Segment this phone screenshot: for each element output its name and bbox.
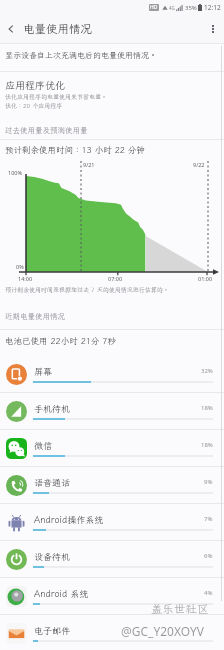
staticText: 6% <box>204 552 213 560</box>
staticText: HD <box>150 4 158 11</box>
button[interactable]: 屏幕 <box>0 356 224 393</box>
button[interactable]: Android 系统 <box>0 578 224 615</box>
button[interactable]: 电子邮件 <box>0 615 224 650</box>
staticText: @GC_Y20XOYV <box>121 623 204 639</box>
staticText: 屏幕 <box>34 366 53 378</box>
button[interactable]: Android操作系统 <box>0 504 224 541</box>
staticText: 预计剩余使用时间：13 小时 22 分钟 <box>5 144 145 155</box>
staticText: 9% <box>204 478 213 486</box>
staticText: 手机待机 <box>34 403 71 415</box>
staticText: 18% <box>201 404 213 412</box>
staticText: 32% <box>201 367 213 375</box>
staticText: 14:00 <box>18 275 33 282</box>
staticText: 35% <box>185 4 197 12</box>
staticText: 过去使用量及预测使用量 <box>5 125 88 135</box>
button[interactable]: 微信 <box>0 430 224 467</box>
staticText: 应用程序优化 <box>5 79 65 92</box>
staticText: 4% <box>204 589 213 597</box>
staticText: 显示设备自上次充满电后的电量使用情况。 <box>5 50 157 61</box>
staticText: 设备待机 <box>34 551 71 563</box>
button[interactable]: More options <box>202 14 224 43</box>
button[interactable]: 手机待机 <box>0 393 224 430</box>
staticText: 语音通话 <box>34 477 71 489</box>
staticText: Android 系统 <box>34 588 89 600</box>
staticText: 18% <box>201 441 213 449</box>
staticText: 电量使用情况 <box>23 21 92 36</box>
staticText: 微信 <box>34 440 53 452</box>
staticText: 电子邮件 <box>34 625 71 637</box>
staticText: 近期电量使用情况 <box>5 311 65 321</box>
button[interactable]: Back <box>0 14 22 43</box>
staticText: 盖乐世社区 <box>151 601 209 616</box>
staticText: 0% <box>16 263 24 270</box>
staticText: 12:12 <box>204 3 221 12</box>
button[interactable]: 语音通话 <box>0 467 224 504</box>
staticText: 01:00 <box>198 275 213 282</box>
staticText: Android操作系统 <box>34 514 104 526</box>
staticText: 优化应用程序的电量使用来节省电量。 <box>5 93 108 101</box>
staticText: 9/22 <box>193 161 205 168</box>
button[interactable]: 设备待机 <box>0 541 224 578</box>
staticText: 9/21 <box>83 161 95 168</box>
staticText: 优化：20 个应用程序 <box>5 102 63 110</box>
staticText: 预计剩余使用时间是根据您过去 7 天的使用情况进行估算的。 <box>5 286 169 294</box>
staticText: 4G <box>169 5 175 11</box>
staticText: 07:00 <box>108 275 123 282</box>
staticText: 7% <box>204 515 213 523</box>
staticText: 电池已使用 22小时 21分 7秒 <box>5 335 116 346</box>
button[interactable]: 应用程序优化 <box>0 71 224 111</box>
staticText: 100% <box>8 169 23 176</box>
